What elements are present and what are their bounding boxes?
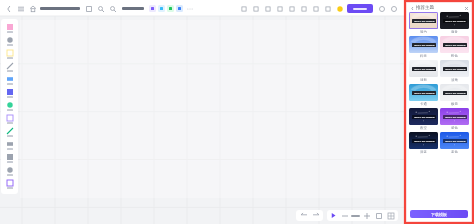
button[interactable]: Here is the headline <box>440 84 469 107</box>
button[interactable]: Apps <box>1 178 18 191</box>
staticText: Here is the headline <box>414 68 435 71</box>
button[interactable]: Zoom <box>108 4 117 13</box>
button[interactable]: Settings <box>389 4 398 13</box>
button[interactable]: Templates <box>1 22 18 35</box>
button[interactable]: Effects <box>1 152 18 165</box>
staticText: Here is the headline <box>445 140 466 143</box>
staticText: Here is the headline <box>414 140 435 143</box>
staticText: 商务 <box>451 30 458 34</box>
staticText: 清新 <box>420 78 427 82</box>
button[interactable]: Here is the headline <box>409 60 438 83</box>
button[interactable]: Here is the headline <box>440 12 469 35</box>
staticText: 蓝色 <box>451 150 458 154</box>
button[interactable]: Upload <box>1 165 18 178</box>
button[interactable]: More <box>185 4 194 13</box>
button[interactable]: Here is the headline <box>440 132 469 155</box>
button[interactable]: Tool <box>149 5 156 12</box>
button[interactable]: Save <box>84 4 93 13</box>
button[interactable]: Zoom in <box>362 211 371 220</box>
staticText: 淡雅 <box>451 78 458 82</box>
button[interactable]: Home <box>28 4 37 13</box>
button[interactable]: Close <box>464 6 468 10</box>
button[interactable]: Paste <box>275 4 284 13</box>
staticText: Here is the headline <box>445 116 466 119</box>
button[interactable]: Here is the headline <box>409 84 438 107</box>
button[interactable]: Redo <box>311 211 320 220</box>
staticText: 简约 <box>420 30 427 34</box>
button[interactable]: Account <box>377 4 386 13</box>
button[interactable]: Table <box>1 113 18 126</box>
button[interactable]: Here is the headline <box>409 132 438 155</box>
button[interactable]: Video <box>1 126 18 139</box>
staticText: 科技 <box>420 54 427 58</box>
button[interactable]: Tool <box>158 5 165 12</box>
staticText: 粉色 <box>451 54 458 58</box>
staticText: 深蓝 <box>420 150 427 154</box>
staticText: Here is the headline <box>414 20 435 23</box>
button[interactable]: Here is the headline <box>409 12 438 35</box>
button[interactable]: Image <box>1 74 18 87</box>
staticText: 紫色 <box>451 126 458 130</box>
staticText: 卡通 <box>420 102 427 106</box>
staticText: Here is the headline <box>414 116 435 119</box>
button[interactable]: Here is the headline <box>409 36 438 59</box>
staticText: Here is the headline <box>414 44 435 47</box>
button[interactable]: Help <box>335 4 344 13</box>
button[interactable]: Search <box>96 4 105 13</box>
button[interactable]: Grid <box>386 211 395 220</box>
button[interactable]: Here is the headline <box>409 108 438 131</box>
staticText: 推荐主题 <box>416 5 434 11</box>
button[interactable]: Tool <box>167 5 174 12</box>
button[interactable]: Background <box>1 48 18 61</box>
button[interactable]: Line <box>1 87 18 100</box>
button[interactable]: Play <box>330 212 337 219</box>
button[interactable]: Back <box>4 4 13 13</box>
button[interactable]: Menu <box>16 4 25 13</box>
staticText: Here is the headline <box>445 44 466 47</box>
button[interactable]: Zoom out <box>340 211 349 220</box>
staticText: 夜空 <box>420 126 427 130</box>
staticText: Here is the headline <box>445 92 466 95</box>
button[interactable]: Lock <box>287 4 296 13</box>
staticText: 极简 <box>451 102 458 106</box>
button[interactable]: Here is the headline <box>440 36 469 59</box>
button[interactable]: Fit <box>374 211 383 220</box>
button[interactable]: Elements <box>1 61 18 74</box>
staticText: Here is the headline <box>414 92 435 95</box>
staticText: Here is the headline <box>445 20 466 23</box>
button[interactable]: Copy <box>263 4 272 13</box>
button[interactable]: Here is the headline <box>440 60 469 83</box>
button[interactable]: Audio <box>1 139 18 152</box>
button[interactable]: Tool <box>176 5 183 12</box>
button[interactable]: Here is the headline <box>440 108 469 131</box>
button[interactable]: Chart <box>1 100 18 113</box>
button[interactable]: Layer <box>323 4 332 13</box>
button[interactable]: Text <box>1 35 18 48</box>
staticText: Here is the headline <box>445 68 466 71</box>
button[interactable]: Align <box>311 4 320 13</box>
button[interactable]: Undo <box>299 211 308 220</box>
staticText: 下载模板 <box>431 212 447 217</box>
button[interactable]: Group <box>299 4 308 13</box>
button[interactable]: Redo <box>251 4 260 13</box>
button[interactable]: Back <box>410 6 414 10</box>
button[interactable] <box>347 4 373 13</box>
button[interactable]: Undo <box>239 4 248 13</box>
button[interactable]: 下载模板 <box>410 210 468 218</box>
